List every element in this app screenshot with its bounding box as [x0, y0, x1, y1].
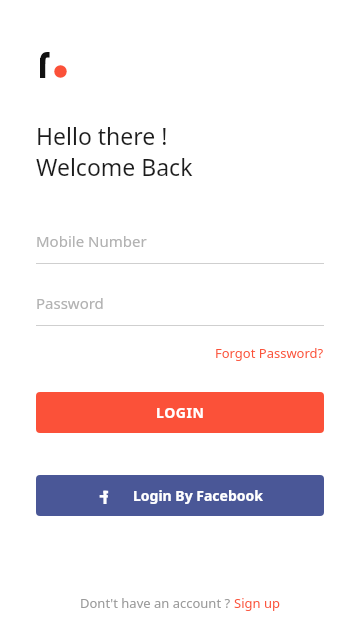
button[interactable]: Mobile Number — [36, 228, 324, 264]
staticText: Login By Facebook — [133, 486, 263, 505]
button[interactable]: Password — [36, 290, 324, 326]
staticText: Dont't have an account ? — [80, 594, 234, 612]
staticText: Forgot Password? — [215, 344, 324, 362]
button[interactable]: LOGIN — [36, 392, 324, 433]
staticText: Welcome Back — [36, 151, 193, 182]
staticText: Mobile Number — [36, 231, 147, 251]
staticText: Password — [36, 293, 104, 313]
staticText: Hello there ! — [36, 120, 168, 151]
staticText: Sign up — [234, 594, 280, 612]
button[interactable]: Login By Facebook — [36, 475, 324, 516]
button[interactable]: Forgot Password? — [215, 344, 324, 362]
staticText: LOGIN — [156, 403, 205, 422]
button[interactable]: Sign up — [234, 594, 280, 612]
